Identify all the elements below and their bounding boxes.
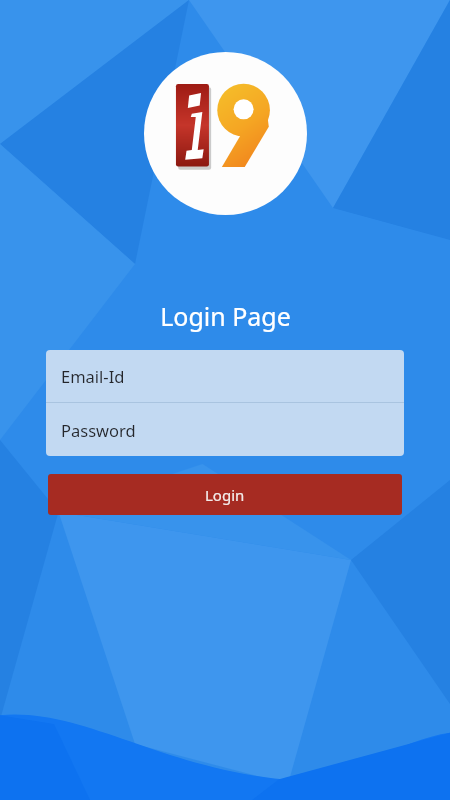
staticText: Login [205,485,245,505]
button[interactable]: Email-Id [46,350,404,402]
staticText: Login Page [160,299,291,333]
staticText: Password [61,419,136,441]
button[interactable]: Login [48,474,402,515]
button[interactable]: Password [46,403,404,456]
staticText: Email-Id [61,365,125,387]
